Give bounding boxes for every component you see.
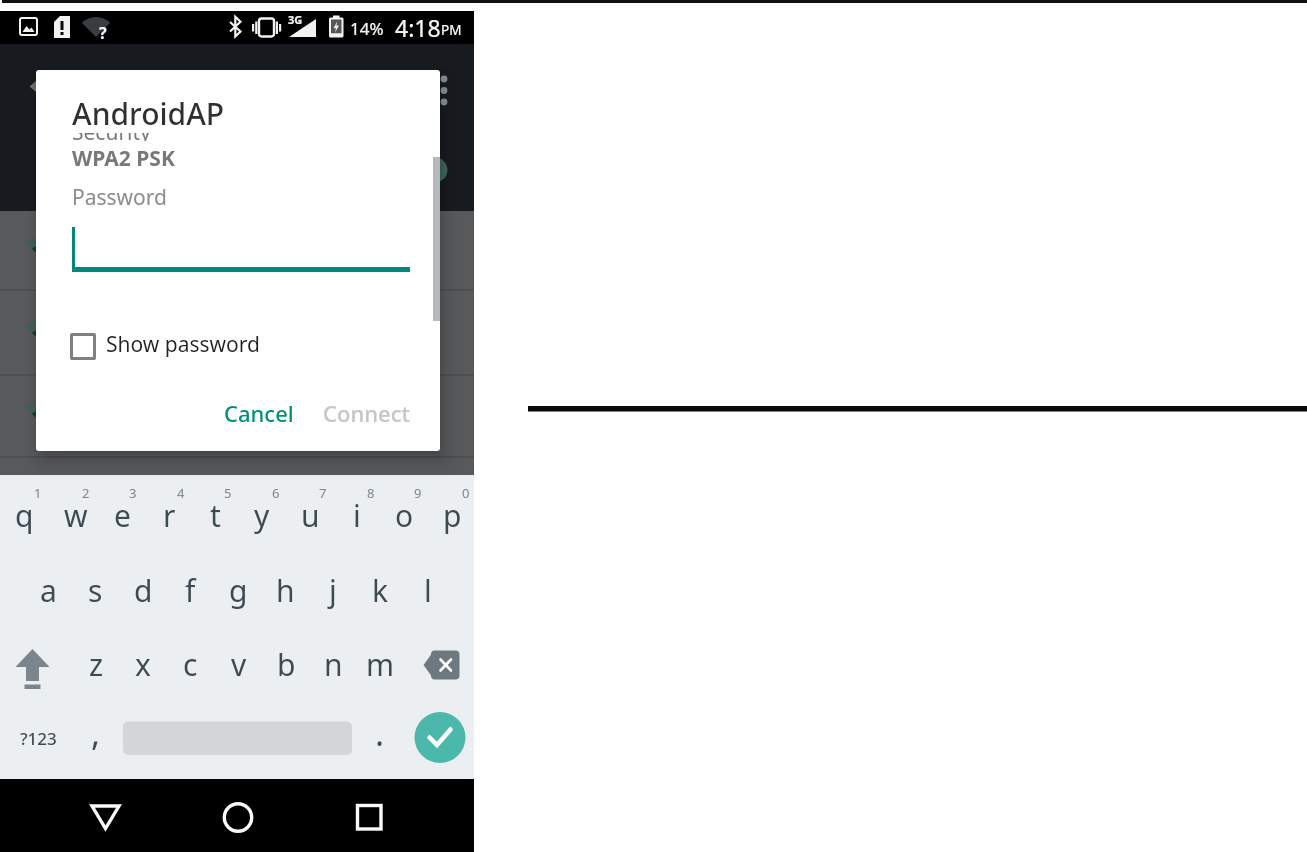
staticText: z <box>89 644 104 685</box>
button[interactable] <box>344 795 396 841</box>
button[interactable]: Connect <box>317 393 415 433</box>
staticText: v <box>231 644 247 685</box>
staticText: , <box>91 710 101 756</box>
staticText: q <box>15 495 34 536</box>
button[interactable] <box>60 322 280 368</box>
button[interactable] <box>80 795 132 841</box>
staticText: 7 <box>319 484 327 498</box>
button[interactable]: c <box>166 635 214 693</box>
button[interactable]: s <box>71 561 119 619</box>
staticText: n <box>324 644 343 685</box>
staticText: 3 <box>129 484 137 498</box>
button[interactable]: l <box>404 561 452 619</box>
button[interactable] <box>10 640 58 690</box>
button[interactable]: g <box>214 561 262 619</box>
staticText: Cancel <box>224 398 294 428</box>
staticText: m <box>366 644 395 685</box>
staticText: Security <box>72 133 151 141</box>
button[interactable]: , <box>72 704 120 762</box>
button[interactable]: p <box>428 486 476 544</box>
button[interactable]: Cancel <box>221 393 297 433</box>
button[interactable]: r <box>145 486 193 544</box>
staticText: 8 <box>367 484 375 498</box>
button[interactable]: k <box>356 561 404 619</box>
staticText: ? <box>99 22 107 44</box>
staticText: t <box>210 495 221 536</box>
button[interactable]: n <box>309 635 357 693</box>
staticText: AndroidAP <box>72 93 225 134</box>
button[interactable] <box>420 640 468 690</box>
staticText: r <box>163 495 176 536</box>
staticText: g <box>229 570 248 611</box>
staticText: WPA2 PSK <box>72 144 175 173</box>
button[interactable]: x <box>119 635 167 693</box>
button[interactable]: h <box>261 561 309 619</box>
staticText: a <box>40 570 57 611</box>
staticText: Connect <box>323 398 410 428</box>
button[interactable]: ?123 <box>14 709 62 767</box>
staticText: 0 <box>462 484 470 498</box>
staticText: i <box>353 495 361 536</box>
button[interactable] <box>414 712 466 764</box>
staticText: Show password <box>106 330 260 359</box>
staticText: 1 <box>34 484 42 498</box>
staticText: 4 <box>177 484 185 498</box>
staticText: o <box>395 495 414 536</box>
staticText: 5 <box>224 484 232 498</box>
staticText: b <box>277 644 296 685</box>
button[interactable]: w <box>52 486 100 544</box>
staticText: 9 <box>414 484 422 498</box>
button[interactable]: y <box>238 486 286 544</box>
button[interactable] <box>212 795 264 841</box>
staticText: y <box>254 495 270 536</box>
staticText: s <box>88 570 103 611</box>
staticText: l <box>424 570 432 611</box>
staticText: 4:18 <box>395 12 441 43</box>
button[interactable]: . <box>356 704 404 762</box>
staticText: w <box>64 495 88 536</box>
staticText: x <box>135 644 151 685</box>
button[interactable]: o <box>380 486 428 544</box>
staticText: PM <box>441 21 462 39</box>
button[interactable]: e <box>98 486 146 544</box>
button[interactable]: b <box>262 635 310 693</box>
staticText: u <box>301 495 320 536</box>
button[interactable]: m <box>356 635 404 693</box>
button[interactable]: t <box>191 486 239 544</box>
staticText: 2 <box>82 484 90 498</box>
staticText: e <box>114 495 131 536</box>
staticText: f <box>185 570 196 611</box>
button[interactable]: v <box>215 635 263 693</box>
staticText: p <box>443 495 462 536</box>
button[interactable]: j <box>309 561 357 619</box>
staticText: j <box>329 570 337 611</box>
staticText: 14% <box>350 17 384 40</box>
button[interactable]: u <box>286 486 334 544</box>
staticText: k <box>372 570 389 611</box>
staticText: Password <box>72 183 167 212</box>
staticText: . <box>375 710 385 756</box>
button[interactable]: a <box>24 561 72 619</box>
button[interactable]: i <box>333 486 381 544</box>
staticText: c <box>183 644 198 685</box>
staticText: 6 <box>272 484 280 498</box>
button[interactable]: z <box>72 635 120 693</box>
button[interactable]: f <box>166 561 214 619</box>
staticText: 3G <box>288 12 303 27</box>
staticText: ?123 <box>20 727 57 750</box>
button[interactable]: d <box>119 561 167 619</box>
staticText: h <box>276 570 295 611</box>
button[interactable]: q <box>0 486 48 544</box>
staticText: d <box>134 570 153 611</box>
